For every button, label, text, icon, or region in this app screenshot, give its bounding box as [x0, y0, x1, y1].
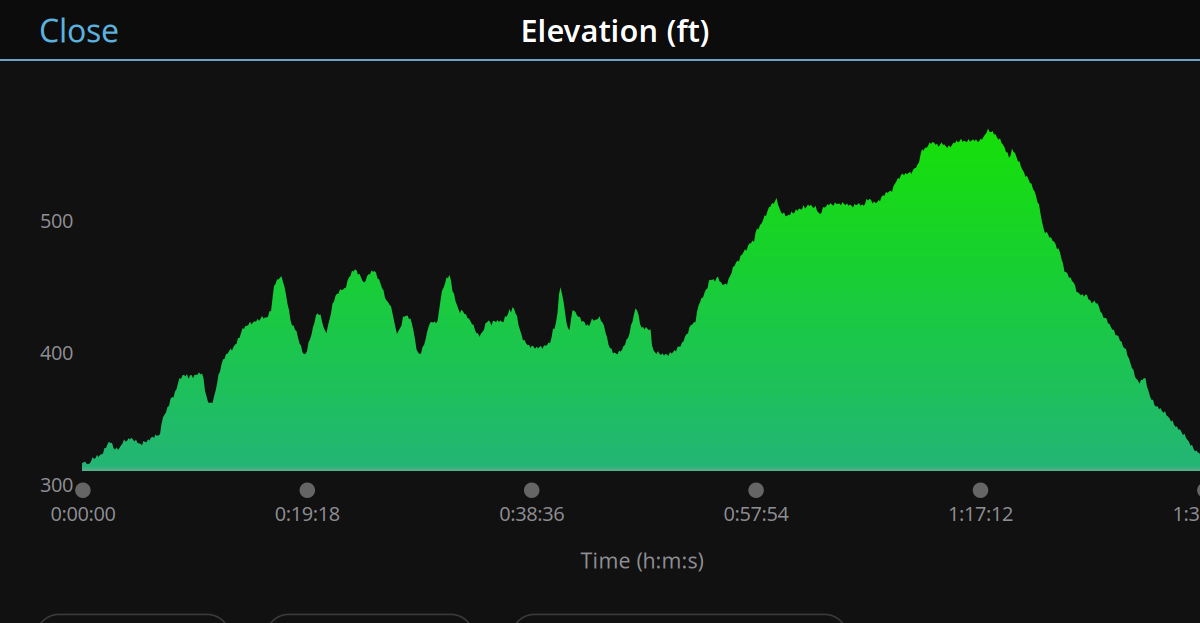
button[interactable]: Heart rate: [266, 614, 474, 623]
button[interactable]: Pace: [511, 614, 847, 623]
staticText: Close: [39, 9, 119, 51]
staticText: 0:38:36: [499, 500, 564, 527]
staticText: 1:17:12: [948, 500, 1013, 527]
staticText: 500: [40, 207, 73, 234]
staticText: 0:57:54: [724, 500, 789, 527]
button[interactable]: Close: [39, 4, 155, 56]
staticText: 400: [40, 339, 73, 366]
staticText: 1:36:30: [1172, 500, 1200, 527]
staticText: Time (h:m:s): [580, 546, 703, 574]
staticText: Elevation (ft): [520, 10, 709, 50]
staticText: 0:19:18: [275, 500, 340, 527]
button[interactable]: Elevation: [36, 614, 230, 623]
staticText: 0:00:00: [50, 500, 115, 527]
staticText: 300: [40, 471, 73, 498]
